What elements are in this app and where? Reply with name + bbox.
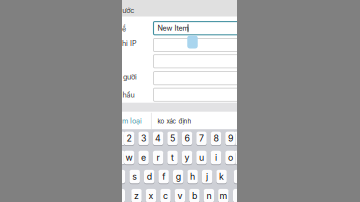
button[interactable]: f (158, 169, 169, 184)
staticText: ko xác định (157, 117, 191, 125)
button[interactable]: 5 (167, 131, 178, 146)
button[interactable]: 4 (153, 131, 163, 146)
button[interactable]: s (129, 169, 140, 184)
button[interactable]: n (204, 188, 214, 202)
staticText: u (199, 152, 204, 163)
button[interactable]: New Item (153, 22, 245, 35)
staticText: 8 (213, 133, 218, 144)
button[interactable]: r (153, 150, 163, 165)
staticText: ước (122, 6, 134, 15)
staticText: g (176, 171, 181, 182)
staticText: b (192, 190, 197, 201)
button[interactable]: 9 (225, 131, 236, 146)
button[interactable]: k (216, 169, 227, 184)
button[interactable]: y (182, 150, 192, 165)
staticText: m (219, 190, 227, 201)
button[interactable]: 3 (138, 131, 149, 146)
button[interactable]: o (225, 150, 236, 165)
staticText: hẩu (122, 91, 134, 99)
staticText: 3 (141, 133, 146, 144)
staticText: n (206, 190, 211, 201)
staticText: c (163, 190, 168, 201)
button[interactable]: g (173, 169, 183, 184)
button[interactable]: 2 (124, 131, 134, 146)
staticText: 7 (199, 133, 204, 144)
staticText: ề (122, 25, 126, 33)
staticText: x (148, 190, 153, 201)
button[interactable]: j (202, 169, 212, 184)
button[interactable]: 8 (211, 131, 221, 146)
button[interactable]: d (144, 169, 154, 184)
staticText: m loại (122, 117, 142, 125)
staticText: k (219, 171, 224, 182)
button[interactable]: z (131, 188, 142, 202)
button[interactable] (153, 38, 245, 52)
staticText: 9 (228, 133, 233, 144)
staticText: r (157, 152, 160, 163)
staticText: v (177, 190, 182, 201)
staticText: y (184, 152, 189, 163)
staticText: 2 (127, 133, 132, 144)
staticText: 6 (184, 133, 189, 144)
button[interactable]: m (218, 188, 229, 202)
button[interactable]: u (196, 150, 207, 165)
button[interactable] (153, 88, 245, 101)
button[interactable]: x (146, 188, 156, 202)
button[interactable]: i (211, 150, 221, 165)
button[interactable]: v (175, 188, 185, 202)
staticText: 4 (155, 133, 161, 144)
button[interactable]: c (160, 188, 171, 202)
button[interactable]: m loại (122, 113, 151, 129)
button[interactable] (153, 72, 245, 85)
staticText: w (126, 152, 133, 163)
staticText: f (162, 171, 165, 182)
button[interactable]: w (124, 150, 134, 165)
button[interactable] (153, 55, 245, 68)
staticText: New Item (157, 24, 188, 32)
staticText: hỉ IP (122, 39, 137, 48)
staticText: h (190, 171, 195, 182)
staticText: z (134, 190, 139, 201)
button[interactable]: 7 (196, 131, 207, 146)
button[interactable]: t (167, 150, 178, 165)
staticText: 5 (170, 133, 175, 144)
staticText: j (206, 171, 208, 182)
staticText: d (147, 171, 152, 182)
staticText: i (215, 152, 217, 163)
button[interactable]: h (187, 169, 198, 184)
staticText: t (171, 152, 174, 163)
button[interactable]: b (189, 188, 200, 202)
staticText: e (141, 152, 146, 163)
button[interactable]: 6 (182, 131, 192, 146)
staticText: gười (123, 73, 137, 81)
staticText: s (132, 171, 137, 182)
staticText: o (228, 152, 233, 163)
button[interactable]: e (138, 150, 149, 165)
